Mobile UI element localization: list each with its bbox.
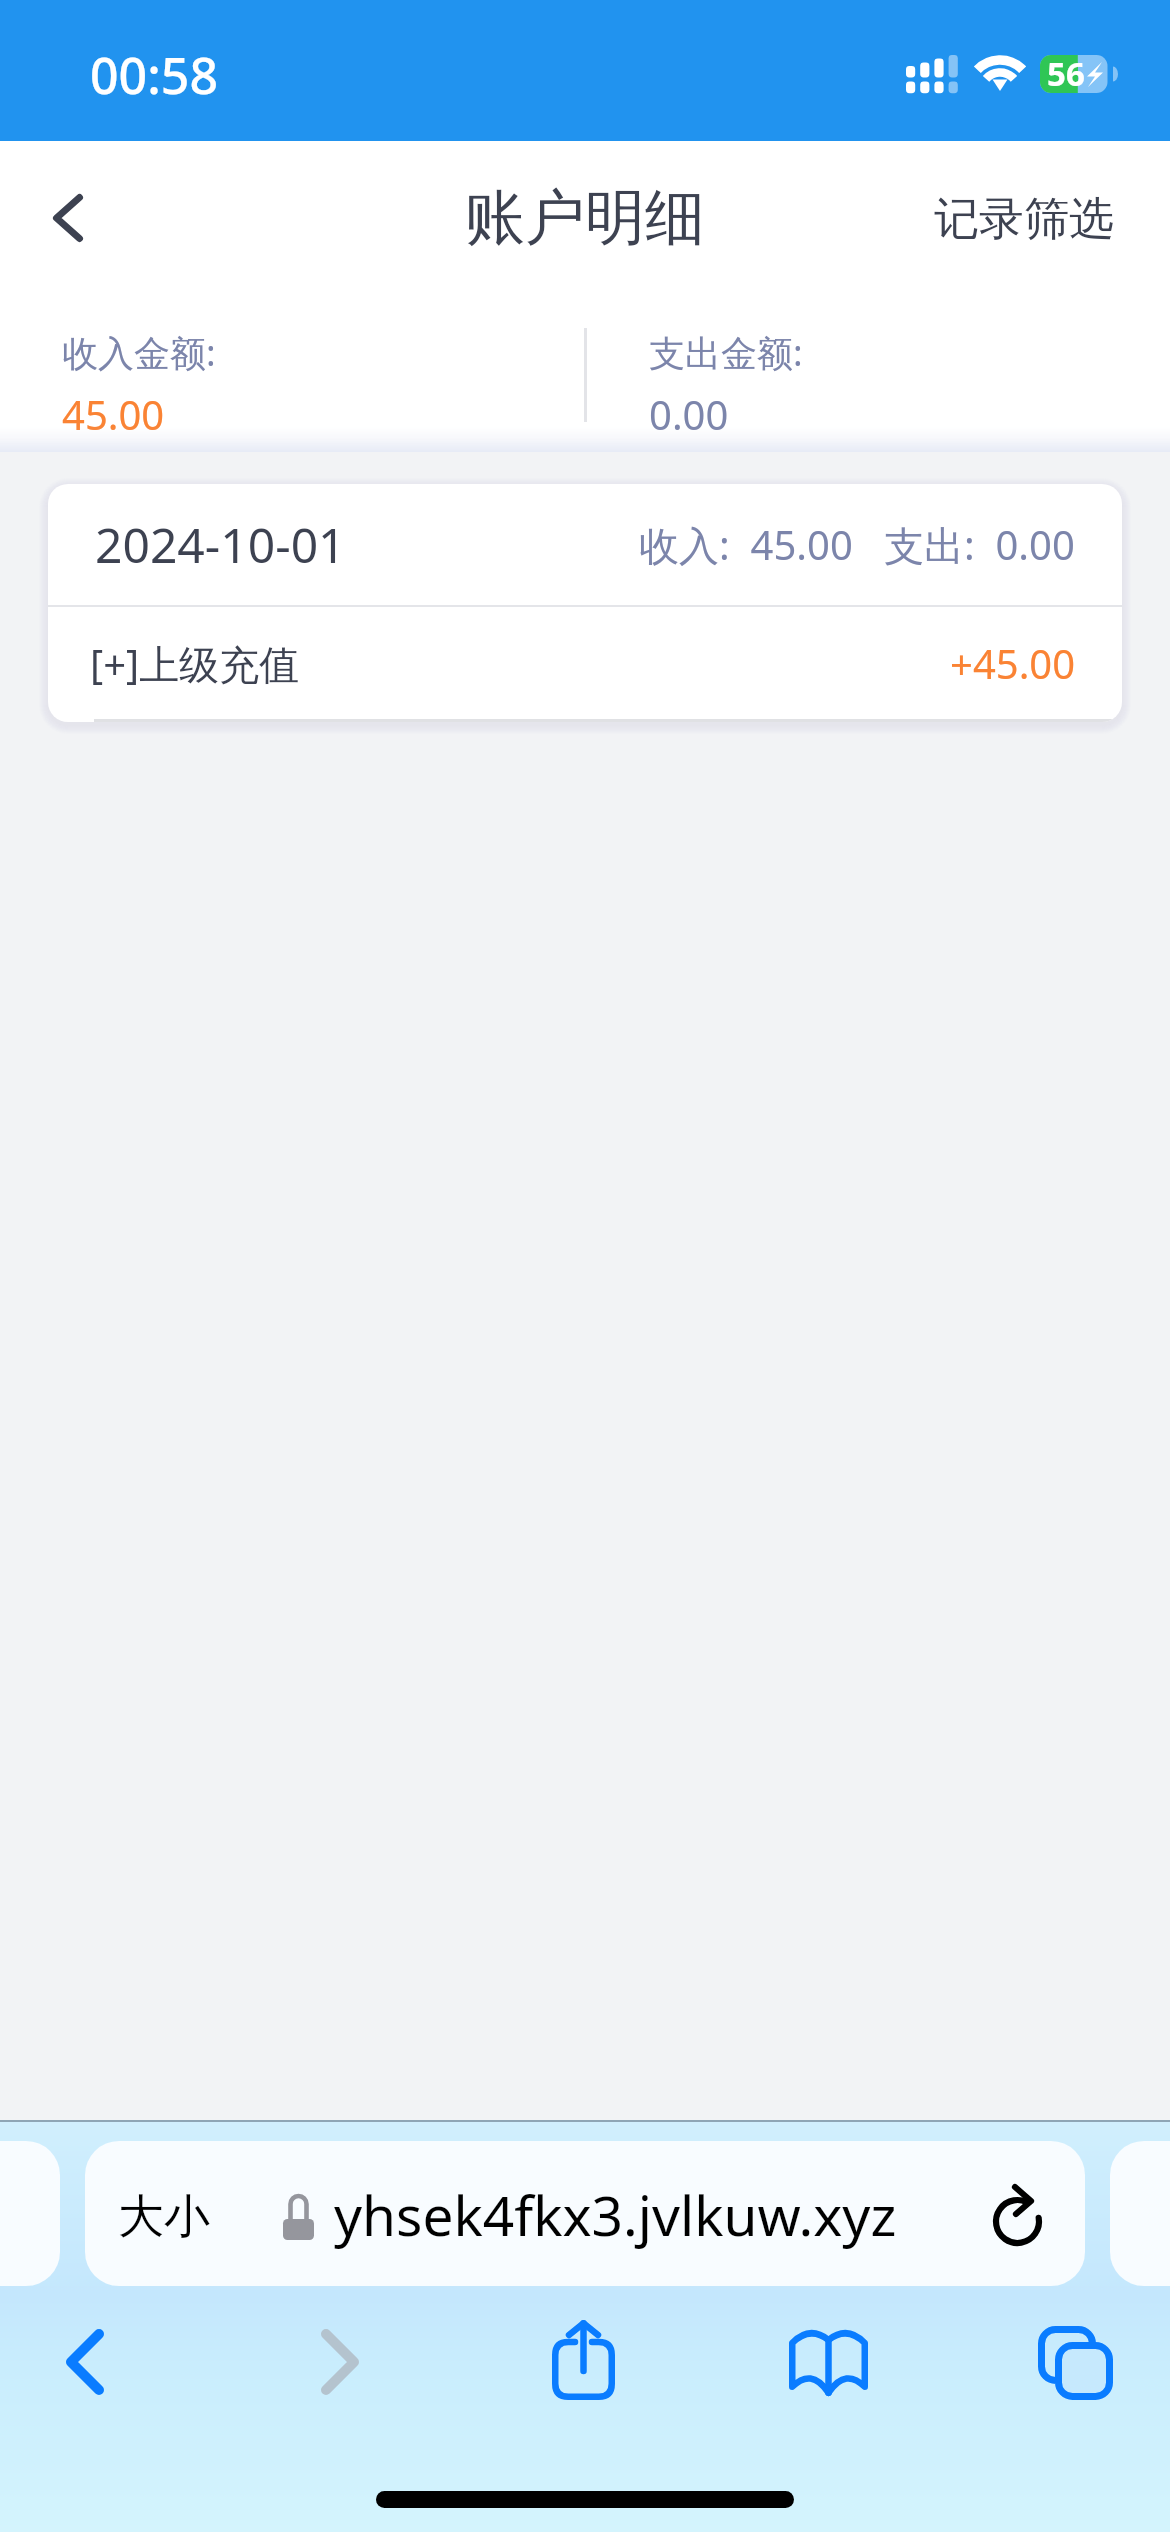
button[interactable]: Forward — [275, 2304, 405, 2420]
staticText: 收入金额: — [62, 328, 216, 377]
button[interactable]: 大小 — [85, 2141, 1085, 2286]
staticText: 45.00 — [62, 387, 165, 441]
staticText: 记录筛选 — [934, 191, 1114, 248]
staticText: [+]上级充值 — [90, 636, 300, 691]
button[interactable]: [+]上级充值 — [48, 607, 1122, 719]
button[interactable]: Back — [13, 163, 123, 273]
button[interactable]: Back — [20, 2304, 150, 2420]
staticText: 大小 — [118, 2188, 210, 2246]
staticText: yhsek4fkx3.jvlkuw.xyz — [334, 2177, 897, 2252]
staticText: 2024-10-01 — [95, 512, 346, 577]
button[interactable]: 2024-10-01 — [48, 484, 1122, 605]
staticText: 0.00 — [649, 387, 729, 441]
staticText: 支出金额: — [649, 328, 803, 377]
staticText: 00:58 — [90, 41, 218, 109]
button[interactable]: Reload — [982, 2179, 1054, 2251]
button[interactable]: Share — [518, 2302, 648, 2418]
button[interactable]: 记录筛选 — [934, 191, 1114, 248]
staticText: 56 — [1047, 51, 1085, 89]
button[interactable]: Tabs — [1010, 2304, 1140, 2420]
staticText: +45.00 — [950, 636, 1076, 690]
staticText: 账户明细 — [465, 180, 705, 256]
button[interactable]: Bookmarks — [763, 2304, 893, 2420]
staticText: 收入: 45.00 支出: 0.00 — [639, 517, 1075, 572]
